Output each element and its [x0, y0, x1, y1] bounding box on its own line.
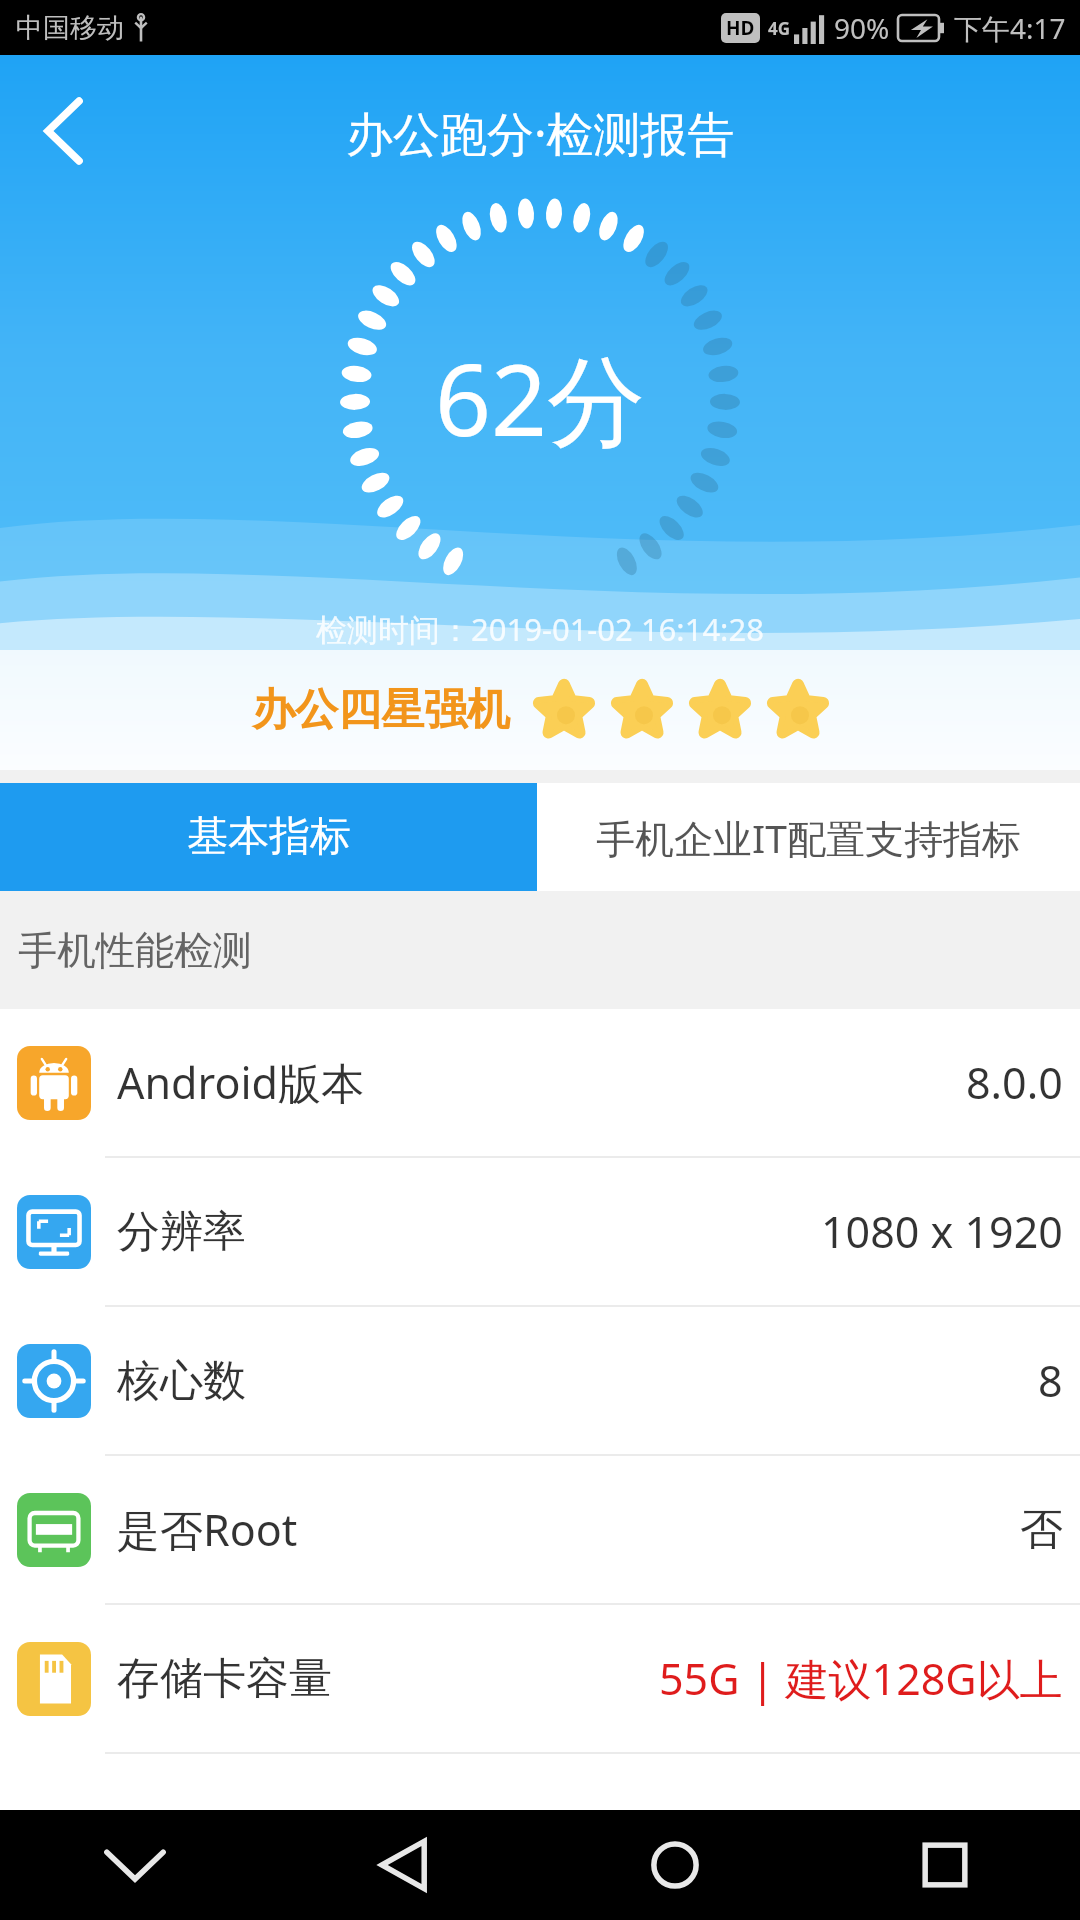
button[interactable]: 存储卡容量: [0, 1605, 1080, 1752]
staticText: 否: [1020, 1503, 1063, 1557]
staticText: 办公跑分·检测报告: [346, 101, 735, 165]
button[interactable]: 基本指标: [0, 783, 537, 891]
staticText: HD: [726, 15, 755, 41]
button[interactable]: 核心数: [0, 1307, 1080, 1454]
staticText: 基本指标: [187, 811, 351, 863]
staticText: 4G: [768, 17, 791, 40]
staticText: 存储卡容量: [117, 1652, 332, 1706]
staticText: 1080 x 1920: [821, 1202, 1063, 1261]
staticText: 分辨率: [117, 1205, 246, 1259]
button[interactable]: 分辨率: [0, 1158, 1080, 1305]
staticText: 55G | 建议128G以上: [659, 1649, 1063, 1708]
button[interactable]: Back: [270, 1810, 540, 1920]
staticText: 90%: [834, 9, 890, 47]
button[interactable]: 手机企业IT配置支持指标: [537, 783, 1080, 891]
staticText: 8: [1038, 1351, 1063, 1410]
button[interactable]: Hide keyboard: [0, 1810, 270, 1920]
button[interactable]: Back: [14, 81, 114, 181]
staticText: 核心数: [117, 1354, 246, 1408]
staticText: 手机性能检测: [18, 926, 252, 975]
staticText: Android版本: [117, 1053, 364, 1112]
button[interactable]: 是否Root: [0, 1456, 1080, 1603]
staticText: 检测时间：2019-01-02 16:14:28: [316, 608, 764, 650]
staticText: 8.0.0: [966, 1053, 1063, 1112]
staticText: 62分: [435, 331, 646, 465]
button[interactable]: Home: [540, 1810, 810, 1920]
staticText: 手机企业IT配置支持指标: [596, 811, 1021, 864]
staticText: 下午4:17: [954, 9, 1066, 47]
staticText: 办公四星强机: [252, 683, 510, 737]
staticText: 是否Root: [117, 1500, 298, 1559]
button[interactable]: Recent apps: [810, 1810, 1080, 1920]
button[interactable]: Android版本: [0, 1009, 1080, 1156]
staticText: 中国移动: [16, 11, 124, 45]
